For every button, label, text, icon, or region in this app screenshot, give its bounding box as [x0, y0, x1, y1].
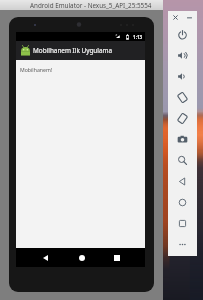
button[interactable]: Home: [71, 248, 93, 267]
button[interactable]: Back: [34, 248, 56, 267]
staticText: Android Emulator - Nexus_5_API_25:5554: [30, 1, 152, 10]
button[interactable]: Recent apps: [106, 248, 128, 267]
button[interactable]: Volume up: [168, 45, 197, 66]
button[interactable]: Close: [168, 11, 182, 24]
button[interactable]: Screenshot: [168, 129, 197, 150]
button[interactable]: Zoom: [168, 150, 197, 171]
button[interactable]: Mobilhanem Ilk Uygulama: [16, 41, 145, 60]
button[interactable]: More: [168, 234, 197, 255]
button[interactable]: Overview: [168, 213, 197, 234]
button[interactable]: Rotate left: [168, 87, 197, 108]
staticText: 1:13: [133, 34, 143, 40]
button[interactable]: Power: [168, 24, 197, 45]
button[interactable]: Volume down: [168, 66, 197, 87]
button[interactable]: Rotate right: [168, 108, 197, 129]
staticText: Mobilhanem Ilk Uygulama: [33, 46, 113, 55]
button[interactable]: Minimize: [182, 11, 197, 24]
button[interactable]: Home: [168, 192, 197, 213]
staticText: Mobilhanem!: [20, 66, 53, 73]
button[interactable]: Back: [168, 171, 197, 192]
